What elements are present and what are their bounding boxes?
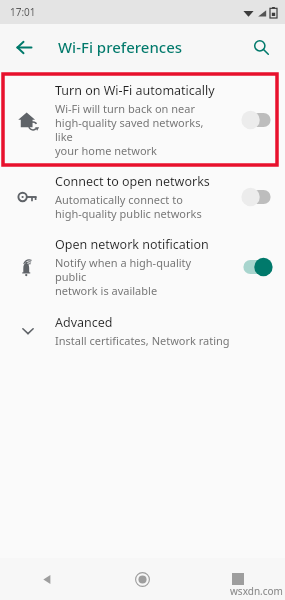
staticText: Turn on Wi-Fi automatically (55, 82, 215, 99)
staticText: Connect to open networks (55, 173, 210, 190)
other: Auto Wi-Fi (17, 110, 38, 131)
button[interactable]: Home (95, 558, 190, 600)
staticText: wsxdn.com (230, 584, 283, 598)
button[interactable]: Recent apps (190, 558, 285, 600)
other: Notifications (17, 257, 38, 278)
button[interactable]: Auto Wi-Fi (0, 78, 285, 162)
staticText: Wi-Fi will turn back on near high-qualit… (55, 101, 223, 158)
button[interactable]: On (229, 232, 285, 302)
button[interactable]: Off (229, 78, 285, 162)
staticText: Notify when a high-quality public networ… (55, 255, 223, 298)
button[interactable]: Expand advanced (0, 302, 285, 360)
staticText: Advanced (55, 314, 113, 331)
other: Open networks (18, 187, 38, 207)
button[interactable]: Off (229, 162, 285, 232)
staticText: Wi-Fi preferences (58, 37, 183, 57)
staticText: Open network notification (55, 236, 209, 253)
staticText: Install certificates, Network rating pro… (55, 333, 277, 348)
button[interactable]: Notifications (0, 232, 285, 302)
staticText: 17:01 (10, 5, 36, 19)
button[interactable]: Search (243, 29, 279, 65)
button[interactable]: Back (6, 29, 42, 65)
button[interactable]: Open networks (0, 162, 285, 232)
button[interactable]: Back (0, 558, 95, 600)
other: Expand advanced (20, 323, 36, 339)
staticText: Automatically connect to high-quality pu… (55, 192, 202, 221)
